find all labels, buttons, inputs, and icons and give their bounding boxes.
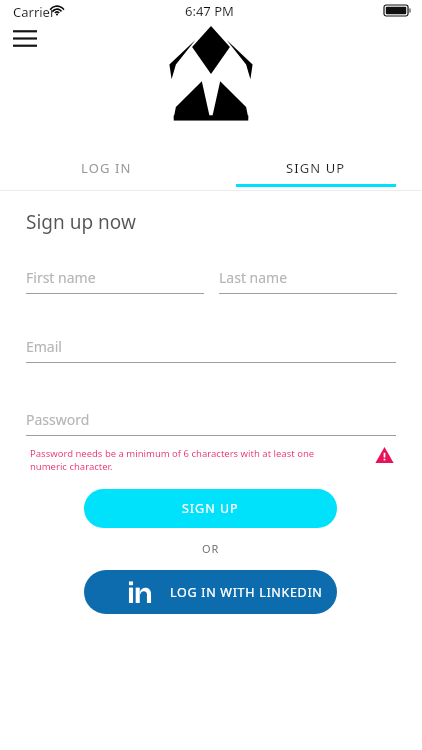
button[interactable]: Password [26, 410, 396, 436]
button[interactable]: First name [26, 268, 204, 294]
staticText: Carrier [13, 3, 56, 21]
staticText: LOG IN [81, 159, 132, 177]
staticText: Password [26, 410, 90, 429]
staticText: Email [26, 337, 62, 356]
button[interactable]: SIGN UP [84, 489, 337, 528]
staticText: First name [26, 268, 96, 287]
staticText: LOG IN WITH LINKEDIN [170, 584, 323, 601]
button[interactable]: Email [26, 337, 396, 363]
button[interactable]: LOG IN [26, 145, 186, 190]
staticText: Password needs be a minimum of 6 charact… [30, 447, 330, 473]
staticText: SIGN UP [286, 159, 346, 177]
staticText: Last name [219, 268, 288, 287]
staticText: SIGN UP [182, 500, 239, 517]
button[interactable]: LOG IN WITH LINKEDIN [84, 570, 337, 614]
staticText: 6:47 PM [185, 2, 234, 20]
button[interactable]: SIGN UP [236, 145, 396, 190]
other: Warning [375, 446, 394, 464]
button[interactable]: Last name [219, 268, 397, 294]
button[interactable]: Menu [6, 22, 44, 54]
staticText: Sign up now [26, 209, 136, 235]
staticText: OR [202, 541, 220, 556]
